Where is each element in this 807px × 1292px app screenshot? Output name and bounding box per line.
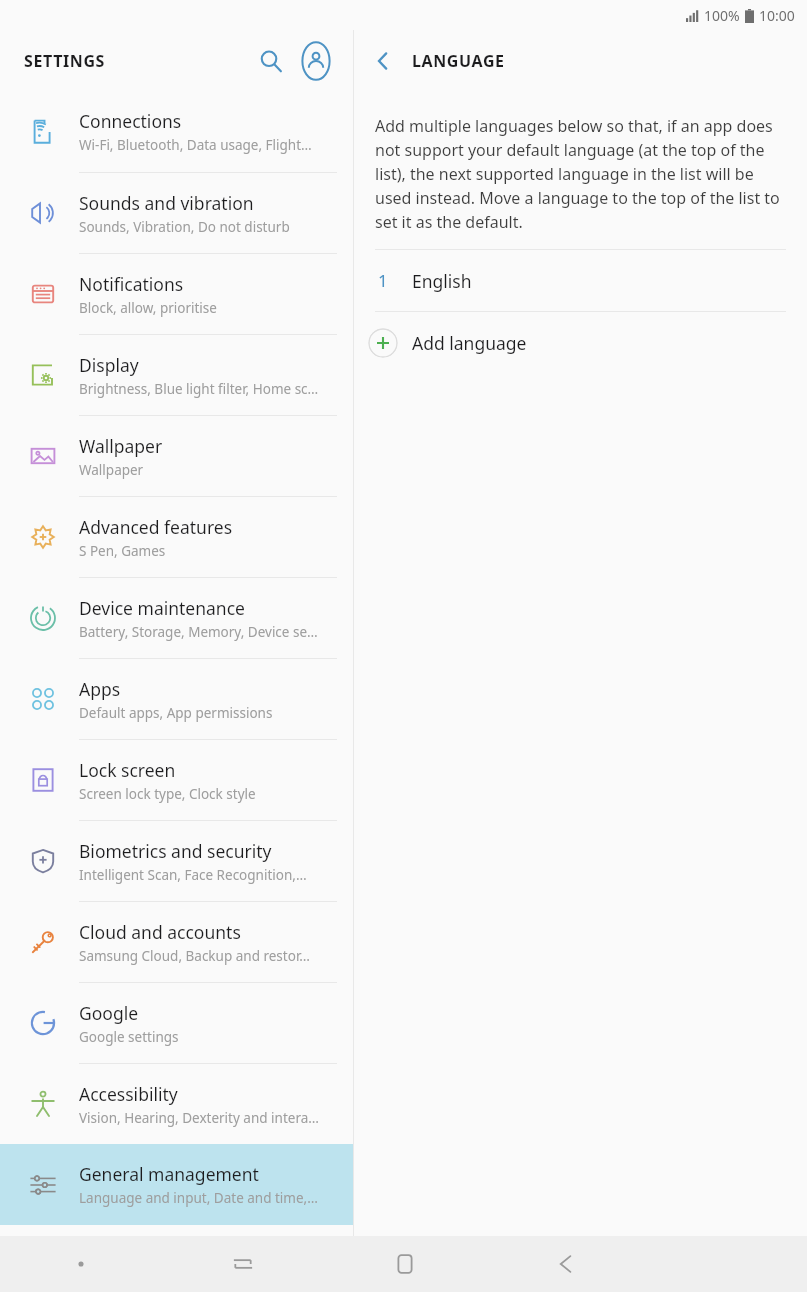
button[interactable]: Notifications	[0, 253, 353, 334]
button[interactable]: Recents	[162, 1236, 324, 1292]
staticText: Lock screen	[79, 758, 176, 782]
button[interactable]: Home	[324, 1236, 485, 1292]
button[interactable]: Menu dot	[0, 1236, 162, 1292]
button[interactable]: Accessibility	[0, 1063, 353, 1144]
button[interactable]: Cloud and accounts	[0, 901, 353, 982]
button[interactable]: Account	[293, 38, 339, 84]
button[interactable]: Biometrics and security	[0, 820, 353, 901]
button[interactable]: Wallpaper	[0, 415, 353, 496]
staticText: Battery, Storage, Memory, Device se…	[79, 623, 318, 641]
button[interactable]: Search	[249, 39, 293, 83]
staticText: English	[412, 269, 472, 293]
button[interactable]: 1	[354, 250, 807, 311]
button[interactable]: Display	[0, 334, 353, 415]
staticText: Brightness, Blue light filter, Home sc…	[79, 380, 319, 398]
staticText: Advanced features	[79, 515, 233, 539]
staticText: Vision, Hearing, Dexterity and intera…	[79, 1109, 319, 1127]
staticText: Apps	[79, 677, 121, 701]
staticText: 100%	[704, 6, 740, 25]
staticText: Add language	[412, 331, 527, 355]
staticText: 1	[378, 269, 388, 292]
staticText: Wallpaper	[79, 434, 163, 458]
button[interactable]: Lock screen	[0, 739, 353, 820]
staticText: Wi-Fi, Bluetooth, Data usage, Flight…	[79, 136, 312, 154]
button[interactable]: Back	[354, 32, 412, 90]
staticText: Screen lock type, Clock style	[79, 785, 256, 803]
staticText: Default apps, App permissions	[79, 704, 273, 722]
staticText: Google settings	[79, 1028, 179, 1046]
button[interactable]: Google	[0, 982, 353, 1063]
staticText: Samsung Cloud, Backup and restor…	[79, 947, 310, 965]
button[interactable]: Apps	[0, 658, 353, 739]
staticText: Cloud and accounts	[79, 920, 241, 944]
staticText: Connections	[79, 109, 182, 133]
staticText: LANGUAGE	[412, 50, 505, 72]
button[interactable]: Back	[485, 1236, 646, 1292]
button[interactable]: General management	[0, 1144, 353, 1225]
staticText: Intelligent Scan, Face Recognition,…	[79, 866, 307, 884]
staticText: Notifications	[79, 272, 184, 296]
button[interactable]: Advanced features	[0, 496, 353, 577]
staticText: Language and input, Date and time,…	[79, 1189, 318, 1207]
staticText: Display	[79, 353, 139, 377]
staticText: Sounds, Vibration, Do not disturb	[79, 218, 290, 236]
staticText: Block, allow, prioritise	[79, 299, 217, 317]
staticText: Device maintenance	[79, 596, 245, 620]
staticText: 10:00	[759, 6, 795, 25]
staticText: Biometrics and security	[79, 839, 272, 863]
staticText: Sounds and vibration	[79, 191, 254, 215]
staticText: General management	[79, 1162, 259, 1186]
button[interactable]: Add language	[354, 312, 807, 373]
staticText: SETTINGS	[24, 50, 105, 72]
staticText: Wallpaper	[79, 461, 144, 479]
staticText: Google	[79, 1001, 139, 1025]
staticText: S Pen, Games	[79, 542, 166, 560]
staticText: Accessibility	[79, 1082, 178, 1106]
staticText: Add multiple languages below so that, if…	[375, 115, 783, 233]
button[interactable]: Connections	[0, 91, 353, 172]
button[interactable]: Device maintenance	[0, 577, 353, 658]
button[interactable]: Sounds and vibration	[0, 172, 353, 253]
